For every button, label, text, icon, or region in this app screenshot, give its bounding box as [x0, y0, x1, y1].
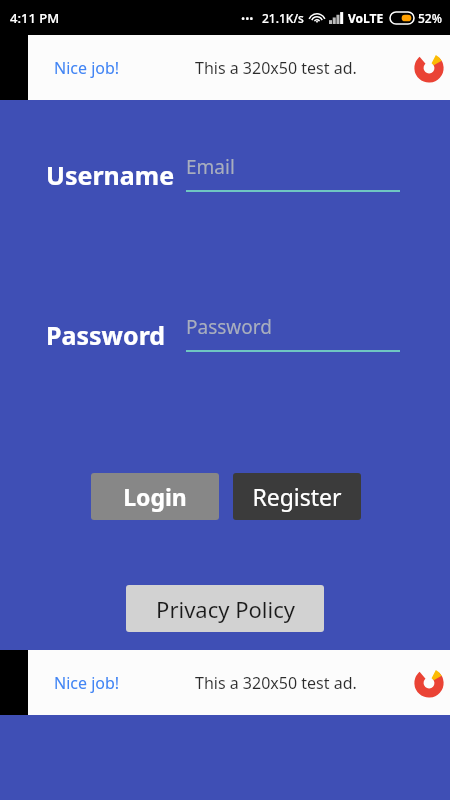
staticText: 21.1K/s	[262, 10, 304, 26]
button[interactable]: Password	[186, 314, 400, 352]
staticText: Nice job!	[54, 672, 120, 694]
staticText: Password	[186, 314, 272, 340]
button[interactable]: Register	[233, 473, 361, 520]
staticText: Email	[186, 154, 235, 180]
staticText: Username	[46, 158, 175, 192]
staticText: 52%	[418, 10, 442, 26]
staticText: Register	[252, 481, 342, 512]
staticText: VoLTE	[348, 10, 384, 26]
button[interactable]: Email	[186, 154, 400, 192]
staticText: This a 320x50 test ad.	[195, 672, 357, 694]
button[interactable]: Login	[91, 473, 219, 520]
staticText: 4:11 PM	[10, 9, 60, 27]
staticText: Password	[46, 318, 166, 352]
button[interactable]: Nice job!	[28, 650, 450, 715]
staticText: Nice job!	[54, 57, 120, 79]
button[interactable]: Privacy Policy	[126, 585, 324, 632]
staticText: Login	[123, 481, 187, 512]
staticText: Privacy Policy	[156, 594, 295, 624]
staticText: This a 320x50 test ad.	[195, 57, 357, 79]
staticText: •••	[241, 11, 254, 26]
button[interactable]: Nice job!	[28, 35, 450, 100]
